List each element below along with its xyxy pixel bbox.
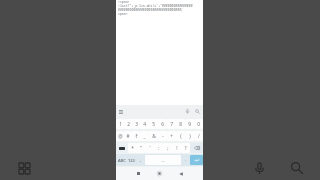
staticText: 1 <box>119 121 122 128</box>
button[interactable]: 9 <box>185 119 194 129</box>
staticText: 6 <box>161 121 164 128</box>
button[interactable]: Recents <box>133 168 144 179</box>
button[interactable]: & <box>149 131 158 141</box>
button[interactable]: 0 <box>194 119 203 129</box>
button[interactable]: 123 <box>127 155 136 165</box>
staticText: # <box>126 133 130 140</box>
button[interactable]: + <box>167 131 176 141</box>
button[interactable]: # <box>124 131 132 141</box>
staticText: 000000000000000000000000000000000| <box>118 8 184 12</box>
button[interactable]: ( <box>176 131 185 141</box>
staticText: - <box>162 133 164 140</box>
button[interactable]: Voice input <box>183 107 192 116</box>
button[interactable]: ) <box>185 131 194 141</box>
staticText: " <box>140 145 142 152</box>
button[interactable]: 3 <box>132 119 140 129</box>
button[interactable] <box>190 155 203 165</box>
staticText: 9 <box>188 121 191 128</box>
button[interactable]: @ <box>116 131 124 141</box>
button[interactable]: 4 <box>140 119 149 129</box>
button[interactable]: Search <box>193 107 202 116</box>
staticText: : <box>158 145 160 152</box>
button[interactable]: Back <box>175 168 186 179</box>
staticText: , <box>140 157 142 163</box>
staticText: & <box>152 133 156 140</box>
staticText: 8 <box>179 121 182 128</box>
button[interactable]: - <box>158 131 167 141</box>
button[interactable]: " <box>136 143 145 153</box>
staticText: ( <box>180 133 182 140</box>
staticText: / <box>198 133 200 140</box>
staticText: 0 <box>197 121 200 128</box>
staticText: 123 <box>128 158 135 163</box>
button[interactable] <box>190 143 203 153</box>
staticText: <last?"+;p:lin-whi)s"+"0000000000000000 <box>118 4 193 8</box>
button[interactable]: ! <box>172 143 181 153</box>
staticText: 3 <box>135 121 138 128</box>
staticText: ? <box>184 145 187 152</box>
staticText: @ <box>118 133 123 140</box>
button[interactable]: 5 <box>149 119 158 129</box>
staticText: ! <box>176 145 178 152</box>
staticText: ' <box>149 145 151 152</box>
button[interactable]: ; <box>163 143 172 153</box>
button[interactable]: Voice search <box>247 156 271 180</box>
staticText: ; <box>167 145 169 152</box>
button[interactable]: * <box>128 143 136 153</box>
button[interactable]: Home <box>154 168 165 179</box>
staticText: + <box>170 133 173 140</box>
button[interactable]: ? <box>181 143 190 153</box>
button[interactable]: 6 <box>158 119 167 129</box>
button[interactable]: , <box>136 155 145 165</box>
button[interactable]: Search <box>285 156 309 180</box>
button[interactable]: / <box>194 131 203 141</box>
staticText: . <box>185 157 187 163</box>
staticText: 2 <box>127 121 130 128</box>
button[interactable] <box>116 143 128 153</box>
staticText: 4 <box>143 121 146 128</box>
staticText: ABC <box>118 158 126 163</box>
staticText: * <box>131 145 134 152</box>
staticText: <span> <box>118 0 130 4</box>
staticText: _ <box>143 133 146 140</box>
button[interactable]: 2 <box>124 119 132 129</box>
button[interactable]: 1 <box>116 119 124 129</box>
staticText: span> <box>118 12 128 16</box>
button[interactable]: : <box>154 143 163 153</box>
button[interactable]: 8 <box>176 119 185 129</box>
button[interactable]: Apps <box>12 156 36 180</box>
button[interactable]: ABC <box>116 155 127 165</box>
button[interactable]: ' <box>145 143 154 153</box>
button[interactable]: 7 <box>167 119 176 129</box>
button[interactable]: _ <box>140 131 149 141</box>
staticText: 5 <box>152 121 155 128</box>
staticText: — <box>161 158 165 163</box>
staticText: ) <box>189 133 191 140</box>
staticText: 7 <box>170 121 173 128</box>
button[interactable]: ₹ <box>132 131 140 141</box>
staticText: ₹ <box>135 133 138 140</box>
button[interactable]: Menu <box>116 107 125 116</box>
